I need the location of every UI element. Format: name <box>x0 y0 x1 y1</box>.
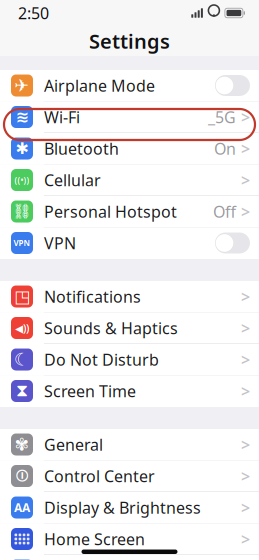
staticText: General <box>44 434 103 455</box>
staticText: ≋ <box>15 108 28 126</box>
staticText: > <box>241 349 250 370</box>
staticText: ◀)) <box>15 321 29 335</box>
staticText: > <box>241 169 250 191</box>
staticText: AA <box>14 499 30 515</box>
staticText: > <box>241 528 250 550</box>
staticText: > <box>241 497 250 518</box>
button[interactable]: ⦶ <box>0 460 259 492</box>
staticText: Cellular <box>44 169 101 191</box>
staticText: On <box>214 138 236 159</box>
button[interactable]: ◳ <box>0 281 259 312</box>
staticText: Wi-Fi <box>44 106 80 128</box>
staticText: > <box>241 106 250 128</box>
button[interactable]: Home Screen <box>0 523 259 555</box>
staticText: Airplane Mode <box>44 75 155 96</box>
staticText: > <box>241 434 250 455</box>
staticText: _5G <box>208 106 236 128</box>
staticText: Control Center <box>44 465 155 487</box>
button[interactable]: ♿ <box>0 555 259 560</box>
staticText: > <box>241 201 250 222</box>
staticText: 2:50 <box>18 2 49 24</box>
button[interactable]: ✾ <box>0 429 259 460</box>
button[interactable]: ⛓ <box>0 196 259 227</box>
staticText: > <box>241 465 250 487</box>
staticText: ☾ <box>14 350 30 369</box>
staticText: VPN <box>13 238 30 248</box>
button[interactable]: ((•)) <box>0 164 259 196</box>
button[interactable]: ◀)) <box>0 312 259 344</box>
staticText: ⛓ <box>12 203 31 220</box>
staticText: Personal Hotspot <box>44 201 177 222</box>
staticText: > <box>241 286 250 307</box>
staticText: Home Screen <box>44 528 145 550</box>
button[interactable]: VPN <box>0 227 259 259</box>
button[interactable]: ✱ <box>0 133 259 164</box>
button[interactable]: ✈ <box>0 70 259 101</box>
staticText: ⧗ <box>16 382 28 399</box>
staticText: ((•)) <box>14 175 29 185</box>
staticText: Sounds & Haptics <box>44 317 178 339</box>
button[interactable]: AA <box>0 492 259 523</box>
staticText: Screen Time <box>44 380 136 402</box>
staticText: Notifications <box>44 286 141 307</box>
staticText: Settings <box>89 28 170 54</box>
staticText: Do Not Disturb <box>44 349 159 370</box>
staticText: VPN <box>44 232 76 254</box>
staticText: > <box>241 317 250 339</box>
staticText: ✾ <box>14 435 29 454</box>
staticText: > <box>241 380 250 402</box>
staticText: ✈ <box>14 76 29 95</box>
button[interactable]: ⧗ <box>0 375 259 407</box>
staticText: Display & Brightness <box>44 497 201 518</box>
staticText: ◳ <box>14 287 30 306</box>
staticText: > <box>241 138 250 159</box>
button[interactable]: ≋ <box>0 101 259 133</box>
button[interactable]: ☾ <box>0 344 259 375</box>
staticText: Off <box>213 201 236 222</box>
staticText: Bluetooth <box>44 138 119 159</box>
staticText: ⦶ <box>16 468 28 484</box>
staticText: ✱ <box>15 139 28 158</box>
